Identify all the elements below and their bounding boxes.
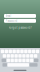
button[interactable]: Key (10, 54, 14, 58)
staticText: Email (6, 14, 12, 18)
button[interactable]: Key (28, 50, 31, 53)
button[interactable]: Forgot password? (8, 26, 31, 29)
button[interactable]: Key (20, 50, 24, 53)
button[interactable]: Key (7, 54, 10, 58)
button[interactable]: Key (14, 54, 18, 58)
button[interactable]: Key (18, 59, 22, 62)
button[interactable]: Key (22, 54, 26, 58)
staticText: Forgot password? (8, 26, 31, 29)
staticText: Password (6, 19, 18, 23)
button[interactable]: Space (7, 63, 29, 67)
button[interactable]: Key (26, 54, 29, 58)
button[interactable]: Key (22, 59, 26, 62)
button[interactable]: Key (34, 54, 37, 58)
button[interactable]: Key (3, 54, 6, 58)
button[interactable]: Email (4, 14, 36, 18)
button[interactable]: Key (16, 50, 20, 53)
button[interactable]: Password (4, 19, 36, 23)
button[interactable]: Key (30, 54, 33, 58)
button[interactable]: Key (14, 59, 18, 62)
button[interactable]: Key (12, 50, 16, 53)
button[interactable]: Key (26, 59, 29, 62)
button[interactable]: Numbers (2, 63, 7, 67)
button[interactable]: Key (24, 50, 28, 53)
button[interactable]: Return (30, 63, 38, 67)
button[interactable]: Key (10, 59, 14, 62)
button[interactable]: Key (18, 54, 22, 58)
